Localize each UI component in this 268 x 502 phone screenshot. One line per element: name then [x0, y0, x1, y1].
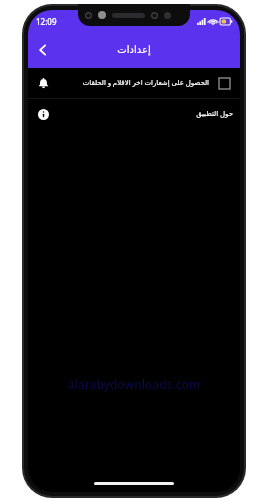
staticText: حول التطبيق: [196, 109, 233, 119]
button[interactable]: Back: [28, 35, 58, 65]
button[interactable]: الحصول على إشعارات اخر الافلام و الحلقات: [28, 68, 240, 98]
staticText: إعدادات: [117, 44, 151, 56]
staticText: الحصول على إشعارات اخر الافلام و الحلقات: [82, 78, 209, 88]
staticText: 12:09: [36, 16, 57, 27]
staticText: alarabydownloads.com: [28, 376, 240, 392]
button[interactable]: حول التطبيق: [28, 99, 240, 129]
button[interactable]: Enable notifications: [215, 74, 233, 92]
